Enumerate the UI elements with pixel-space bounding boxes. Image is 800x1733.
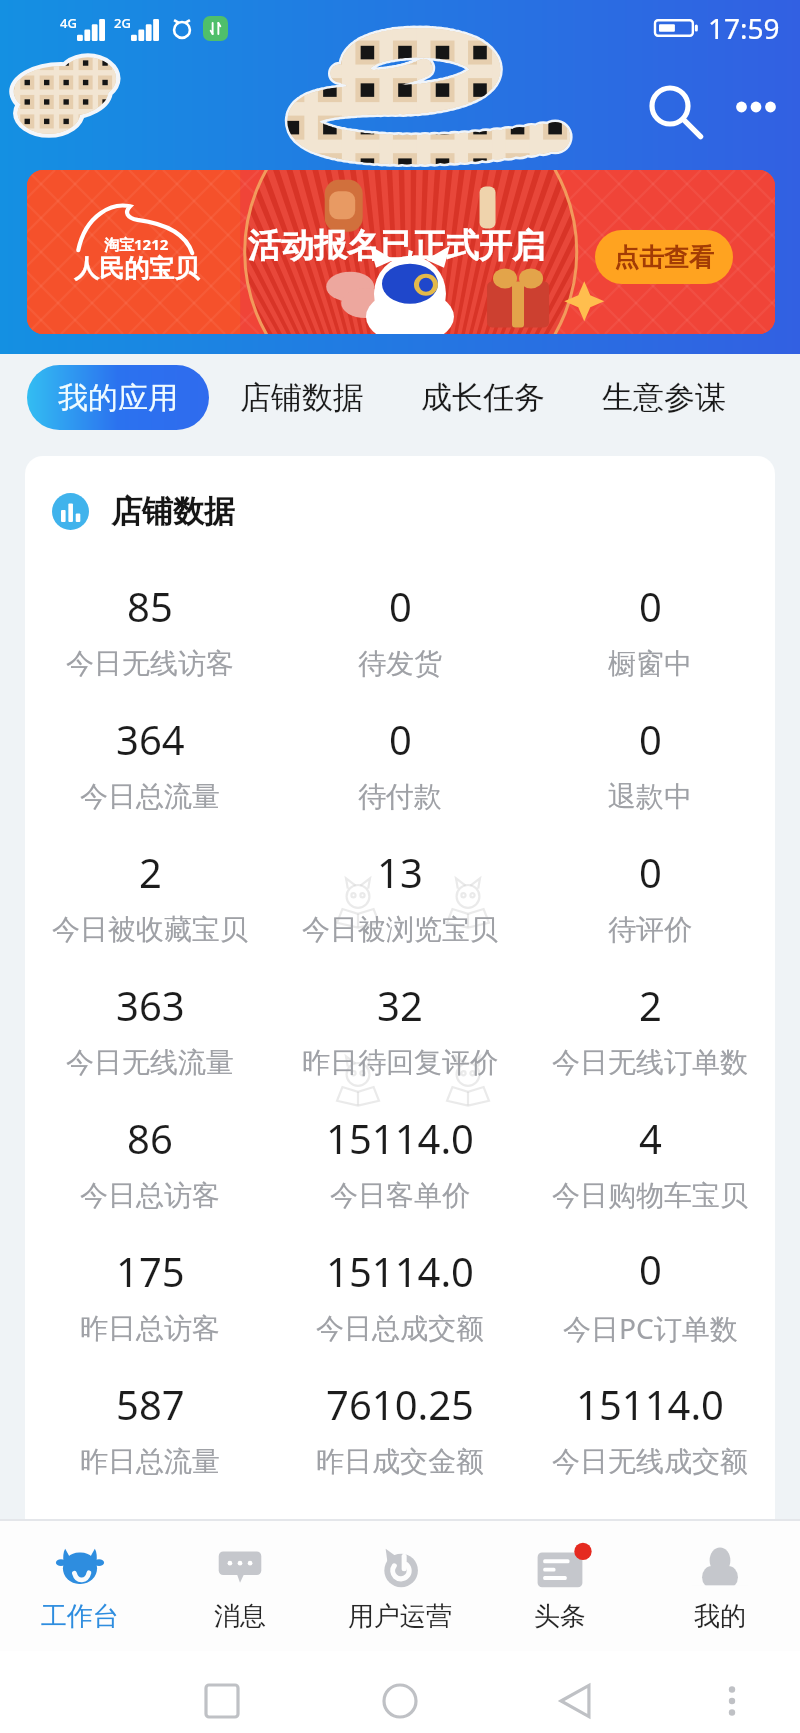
staticText: 363 xyxy=(116,978,185,1032)
staticText: 人民的宝贝 xyxy=(74,253,199,284)
staticText: 橱窗中 xyxy=(608,646,692,681)
staticText: 今日总流量 xyxy=(80,779,220,814)
staticText: 头条 xyxy=(534,1600,586,1633)
button[interactable]: 成长任务 xyxy=(402,365,564,430)
staticText: 今日购物车宝贝 xyxy=(552,1178,748,1213)
staticText: 0 xyxy=(639,845,662,899)
staticText: 昨日成交金额 xyxy=(316,1444,484,1479)
staticText: 0 xyxy=(639,579,662,633)
button[interactable]: Home xyxy=(364,1665,436,1733)
staticText: 今日被浏览宝贝 xyxy=(302,912,498,947)
staticText: 2 xyxy=(639,978,662,1032)
staticText: 今日无线成交额 xyxy=(552,1444,748,1479)
staticText: 587 xyxy=(116,1377,185,1431)
staticText: 待付款 xyxy=(358,779,442,814)
button[interactable]: Back xyxy=(540,1665,612,1733)
staticText: 4G xyxy=(60,14,77,32)
staticText: 15114.0 xyxy=(326,1111,474,1165)
button[interactable]: Menu xyxy=(696,1665,768,1733)
staticText: 昨日总流量 xyxy=(80,1444,220,1479)
staticText: 0 xyxy=(389,579,412,633)
staticText: 我的应用 xyxy=(58,379,178,417)
staticText: 昨日总访客 xyxy=(80,1311,220,1346)
staticText: 昨日待回复评价 xyxy=(302,1045,498,1080)
staticText: 店铺数据 xyxy=(111,492,235,531)
staticText: 85 xyxy=(127,579,173,633)
button[interactable]: 消息 xyxy=(160,1519,320,1651)
button[interactable]: Search xyxy=(640,76,708,144)
staticText: 我的 xyxy=(694,1600,746,1633)
button[interactable]: 我的 xyxy=(640,1519,800,1651)
staticText: 今日无线流量 xyxy=(66,1045,234,1080)
staticText: 175 xyxy=(116,1244,185,1298)
staticText: 今日总访客 xyxy=(80,1178,220,1213)
staticText: 消息 xyxy=(214,1600,266,1633)
staticText: 生意参谋 xyxy=(602,378,726,417)
button[interactable]: 淘宝1212 xyxy=(27,170,775,334)
staticText: 2G xyxy=(114,14,131,32)
staticText: 13 xyxy=(377,845,423,899)
staticText: 32 xyxy=(377,978,423,1032)
staticText: 今日总成交额 xyxy=(316,1311,484,1346)
staticText: 364 xyxy=(116,712,185,766)
staticText: 用户运营 xyxy=(348,1600,452,1633)
staticText: 15114.0 xyxy=(326,1244,474,1298)
button[interactable]: Recents xyxy=(186,1665,258,1733)
staticText: 86 xyxy=(127,1111,173,1165)
staticText: 4 xyxy=(639,1111,662,1165)
staticText: 今日PC订单数 xyxy=(563,1309,738,1347)
staticText: 0 xyxy=(389,712,412,766)
staticText: 0 xyxy=(639,712,662,766)
staticText: 淘宝1212 xyxy=(104,234,169,254)
staticText: 待评价 xyxy=(608,912,692,947)
button[interactable]: More options xyxy=(722,76,790,144)
staticText: 7610.25 xyxy=(326,1377,474,1431)
staticText: 17:59 xyxy=(708,9,780,47)
staticText: 点击查看 xyxy=(614,242,714,273)
staticText: 今日客单价 xyxy=(330,1178,470,1213)
staticText: 活动报名已正式开启 xyxy=(248,225,545,267)
staticText: 店铺数据 xyxy=(240,378,364,417)
staticText: 工作台 xyxy=(41,1600,119,1633)
button[interactable]: 我的应用 xyxy=(27,365,209,430)
button[interactable]: 工作台 xyxy=(0,1519,160,1651)
button[interactable]: 头条 xyxy=(480,1519,640,1651)
staticText: 今日无线订单数 xyxy=(552,1045,748,1080)
staticText: 0 xyxy=(639,1242,662,1296)
staticText: 今日被收藏宝贝 xyxy=(52,912,248,947)
button[interactable]: 生意参谋 xyxy=(583,365,745,430)
button[interactable]: 店铺数据 xyxy=(221,365,383,430)
staticText: 2 xyxy=(139,845,162,899)
staticText: 15114.0 xyxy=(576,1377,724,1431)
staticText: 今日无线访客 xyxy=(66,646,234,681)
staticText: 退款中 xyxy=(608,779,692,814)
button[interactable]: 点击查看 xyxy=(595,230,733,284)
button[interactable]: 用户运营 xyxy=(320,1519,480,1651)
staticText: 成长任务 xyxy=(421,378,545,417)
staticText: 待发货 xyxy=(358,646,442,681)
